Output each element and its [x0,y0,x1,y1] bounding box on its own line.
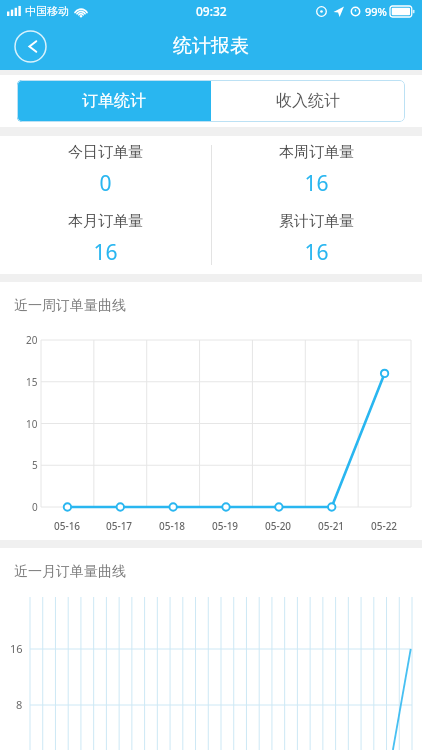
staticText: 近一月订单量曲线 [14,563,126,581]
staticText: 05-22 [371,519,398,533]
staticText: 0 [99,169,112,198]
button[interactable]: 收入统计 [211,80,405,122]
staticText: 8 [16,697,23,712]
staticText: 05-20 [265,519,292,533]
staticText: 累计订单量 [279,212,354,231]
button[interactable]: 订单统计 [17,80,211,122]
staticText: 15 [26,375,38,389]
staticText: 16 [93,238,118,267]
staticText: 今日订单量 [68,143,143,162]
staticText: 99% [365,4,387,19]
staticText: 16 [304,169,329,198]
staticText: 10 [26,417,38,431]
staticText: 统计报表 [173,34,249,58]
staticText: 收入统计 [276,91,340,111]
staticText: 05-16 [54,519,81,533]
staticText: 近一周订单量曲线 [14,297,126,315]
staticText: 16 [10,641,23,656]
button[interactable]: Back [14,30,47,63]
staticText: 本周订单量 [279,143,354,162]
staticText: 05-21 [318,519,345,533]
staticText: 16 [304,238,329,267]
staticText: 中国移动 [25,4,69,18]
staticText: 0 [32,500,38,514]
staticText: 本月订单量 [68,212,143,231]
staticText: 20 [26,333,38,347]
staticText: 09:32 [196,3,227,19]
staticText: 5 [32,458,38,472]
staticText: 订单统计 [82,91,146,111]
staticText: 05-19 [212,519,239,533]
staticText: 05-17 [106,519,133,533]
staticText: 05-18 [159,519,186,533]
